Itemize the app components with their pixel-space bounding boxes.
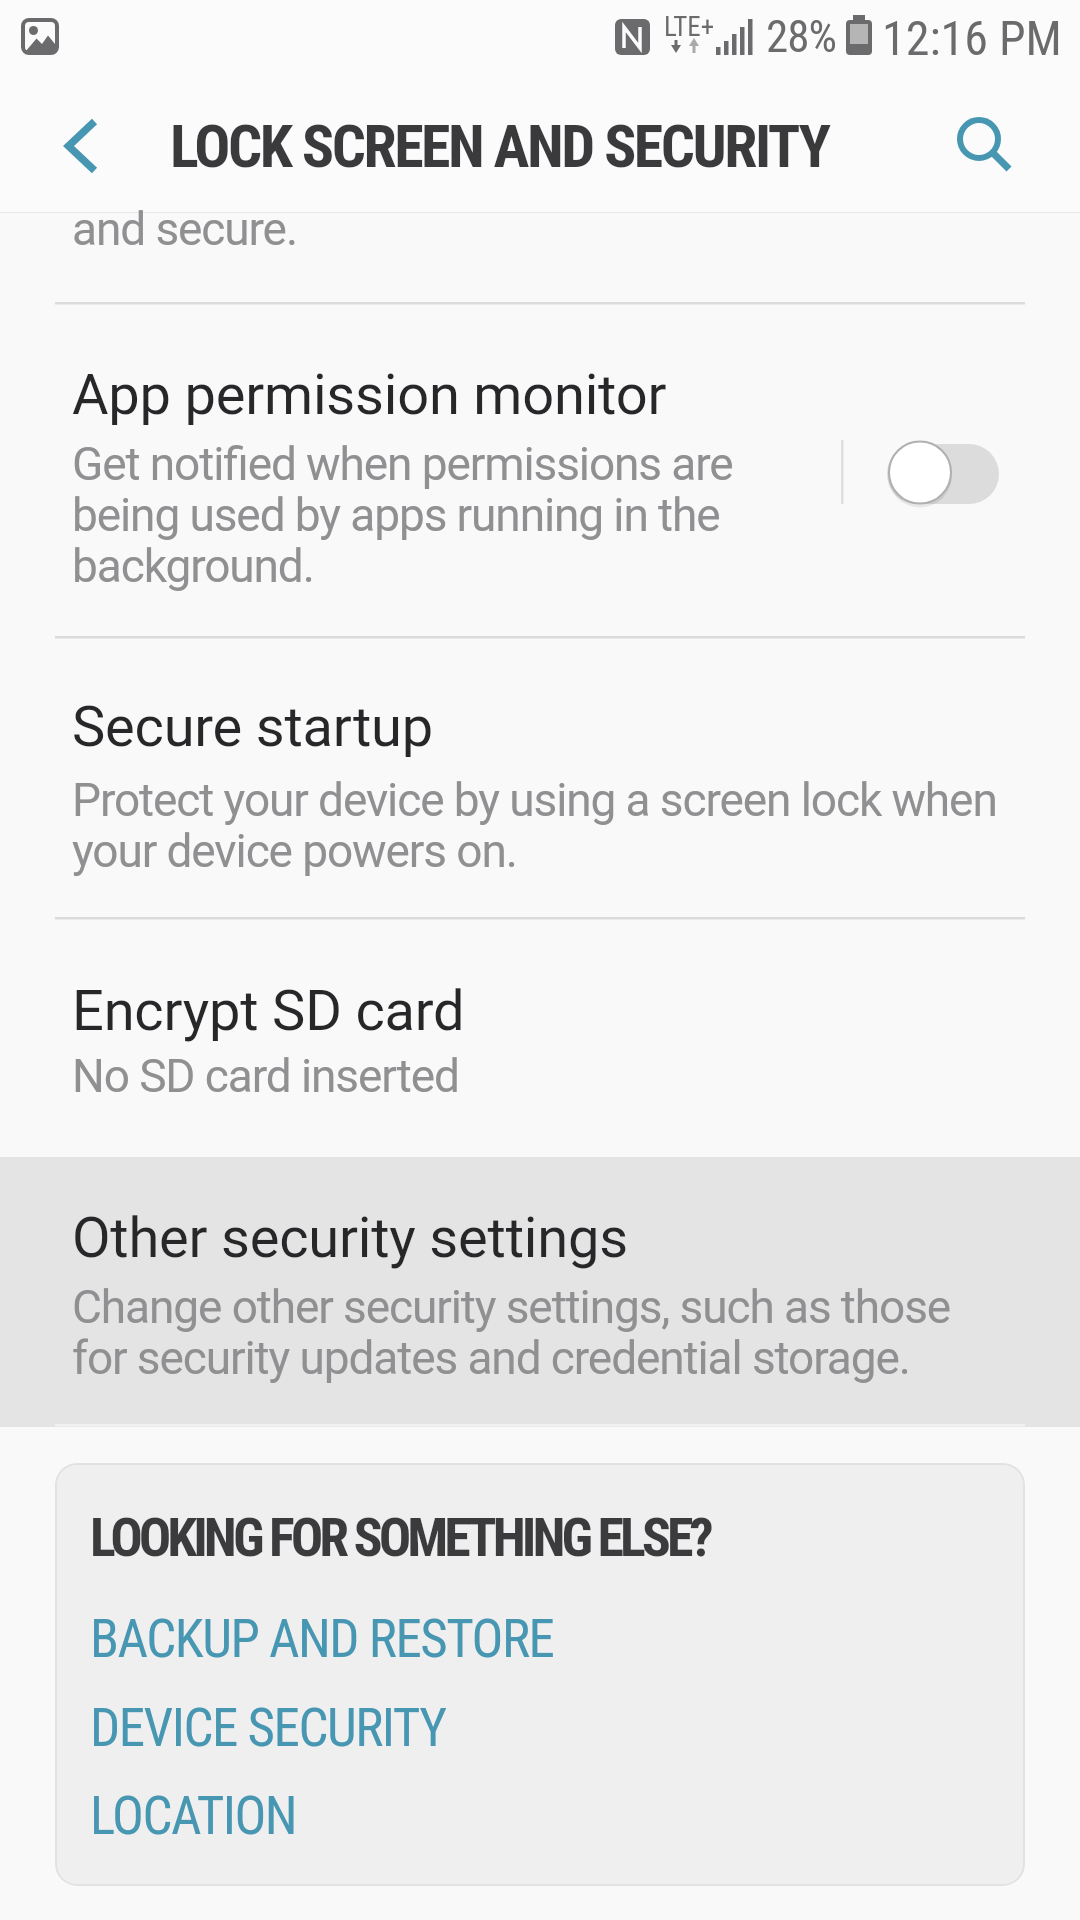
button[interactable] <box>945 105 1025 181</box>
staticText: BACKUP AND RESTORE <box>90 1608 554 1670</box>
staticText: 28% <box>766 10 836 63</box>
staticText: your device powers on. <box>72 824 517 878</box>
staticText: No SD card inserted <box>72 1049 459 1103</box>
staticText: for security updates and credential stor… <box>72 1331 910 1385</box>
button[interactable] <box>88 1775 303 1847</box>
button[interactable] <box>40 110 120 186</box>
staticText: LTE+ <box>664 11 715 43</box>
staticText: App permission monitor <box>72 362 667 428</box>
staticText: LOCATION <box>90 1785 297 1847</box>
button[interactable] <box>0 920 1080 1157</box>
staticText: LOOKING FOR SOMETHING ELSE? <box>90 1506 710 1569</box>
button[interactable] <box>0 305 1080 636</box>
staticText: Secure startup <box>72 694 434 760</box>
staticText: 12:16 PM <box>882 10 1062 66</box>
staticText: Encrypt SD card <box>72 978 465 1044</box>
button[interactable] <box>880 435 1008 515</box>
staticText: DEVICE SECURITY <box>90 1697 446 1759</box>
staticText: Get notified when permissions are <box>72 437 733 491</box>
button[interactable] <box>88 1598 553 1670</box>
staticText: being used by apps running in the <box>72 488 720 542</box>
button[interactable] <box>88 1687 453 1759</box>
staticText: background. <box>72 539 314 593</box>
staticText: Protect your device by using a screen lo… <box>72 773 997 827</box>
button[interactable] <box>0 1157 1080 1427</box>
staticText: Other security settings <box>72 1205 628 1271</box>
button[interactable] <box>0 639 1080 917</box>
staticText: LOCK SCREEN AND SECURITY <box>170 111 829 181</box>
staticText: Change other security settings, such as … <box>72 1280 951 1334</box>
staticText: and secure. <box>72 202 297 256</box>
